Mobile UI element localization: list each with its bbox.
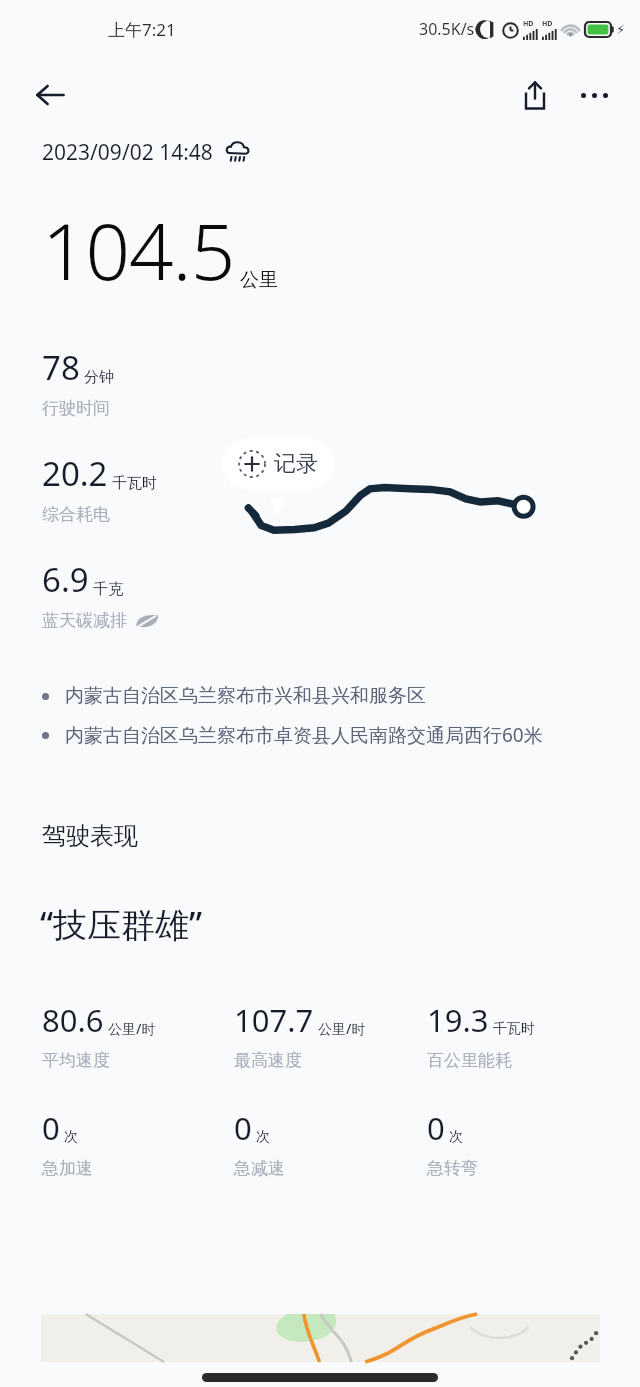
button[interactable]: 内蒙古自治区乌兰察布市卓资县人民南路交通局西行60米: [42, 715, 640, 755]
staticText: 急转弯: [427, 1158, 478, 1179]
staticText: 次: [256, 1128, 270, 1146]
staticText: 百公里能耗: [427, 1050, 512, 1071]
button[interactable]: 记录: [222, 439, 334, 489]
staticText: 驾驶表现: [42, 821, 138, 851]
staticText: 最高速度: [234, 1050, 302, 1071]
staticText: 急减速: [234, 1158, 285, 1179]
staticText: 公里: [240, 268, 278, 292]
button[interactable]: Back: [26, 71, 74, 119]
staticText: 30.5K/s: [419, 18, 475, 40]
staticText: 0: [427, 1107, 445, 1149]
staticText: 急加速: [42, 1158, 93, 1179]
button[interactable]: Share: [510, 70, 560, 120]
staticText: 千瓦时: [112, 474, 157, 493]
staticText: 千瓦时: [493, 1020, 535, 1038]
staticText: 104.5: [42, 197, 235, 303]
staticText: 6.9: [42, 557, 89, 602]
staticText: HD: [523, 19, 534, 29]
staticText: 分钟: [84, 368, 114, 387]
staticText: 107.7: [234, 999, 314, 1041]
staticText: “技压群雄”: [40, 901, 203, 947]
staticText: 记录: [274, 450, 318, 478]
staticText: 19.3: [427, 999, 489, 1041]
staticText: 0: [234, 1107, 252, 1149]
staticText: 2023/09/02 14:48: [42, 138, 213, 167]
staticText: 上午7:21: [108, 18, 176, 41]
staticText: ⚡: [616, 22, 626, 37]
staticText: 公里/时: [318, 1019, 366, 1038]
staticText: HD: [542, 19, 553, 29]
staticText: 千克: [93, 580, 123, 599]
staticText: 行驶时间: [42, 398, 110, 419]
staticText: 80.6: [42, 999, 104, 1041]
staticText: 内蒙古自治区乌兰察布市卓资县人民南路交通局西行60米: [65, 722, 543, 748]
button[interactable]: 内蒙古自治区乌兰察布市兴和县兴和服务区: [42, 677, 640, 715]
staticText: 综合耗电: [42, 504, 110, 525]
staticText: 公里/时: [108, 1019, 156, 1038]
staticText: 20.2: [42, 451, 108, 496]
staticText: 内蒙古自治区乌兰察布市兴和县兴和服务区: [65, 684, 426, 708]
staticText: 次: [449, 1128, 463, 1146]
staticText: 平均速度: [42, 1050, 110, 1071]
staticText: 0: [42, 1107, 60, 1149]
staticText: 次: [64, 1128, 78, 1146]
button[interactable]: More options: [570, 71, 618, 119]
staticText: 78: [42, 345, 80, 390]
staticText: 蓝天碳减排: [42, 610, 127, 631]
